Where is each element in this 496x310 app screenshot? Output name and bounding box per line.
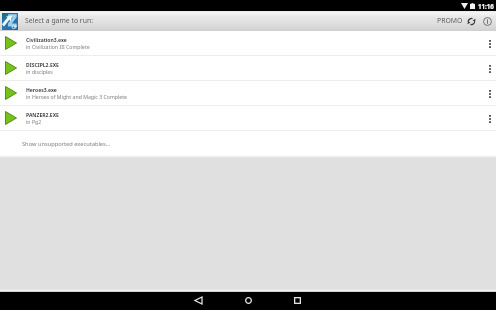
- staticText: in disciples: [26, 68, 53, 75]
- button[interactable]: Recents: [287, 291, 307, 309]
- staticText: 11:16: [478, 2, 494, 10]
- staticText: Select a game to run:: [25, 16, 93, 25]
- staticText: DISCIPL2.EXE: [26, 62, 59, 69]
- button[interactable]: Refresh: [464, 11, 478, 31]
- button[interactable]: Home: [238, 291, 258, 309]
- button[interactable]: Heroes3.exe: [0, 81, 496, 106]
- button[interactable]: More options: [483, 31, 496, 56]
- staticText: PANZER2.EXE: [26, 112, 59, 119]
- staticText: in Civilization III Complete: [26, 43, 90, 50]
- button[interactable]: PROMO: [435, 17, 465, 26]
- staticText: Heroes3.exe: [26, 87, 57, 94]
- button[interactable]: More options: [483, 106, 496, 131]
- button[interactable]: Civilization3.exe: [0, 31, 496, 56]
- staticText: Show unsupported executables...: [22, 140, 111, 148]
- staticText: in Heroes of Might and Magic 3 Complete: [26, 93, 128, 100]
- staticText: PROMO: [437, 16, 463, 25]
- button[interactable]: More options: [483, 56, 496, 81]
- button[interactable]: Show unsupported executables...: [0, 131, 496, 155]
- staticText: Civilization3.exe: [26, 37, 67, 44]
- button[interactable]: DISCIPL2.EXE: [0, 56, 496, 81]
- button[interactable]: Info: [480, 11, 494, 31]
- button[interactable]: Back: [188, 291, 208, 309]
- button[interactable]: PANZER2.EXE: [0, 106, 496, 131]
- staticText: in Pg2: [26, 118, 42, 125]
- button[interactable]: More options: [483, 81, 496, 106]
